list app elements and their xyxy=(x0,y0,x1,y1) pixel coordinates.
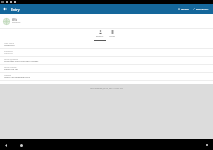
button[interactable]: Website xyxy=(0,73,213,81)
button[interactable]: Navigate up xyxy=(0,4,9,14)
staticText: Entry xyxy=(11,7,20,12)
staticText: novelty78 xyxy=(4,44,15,47)
button[interactable]: Notifications xyxy=(204,142,210,148)
button[interactable]: DETAILS xyxy=(94,29,106,41)
staticText: Personal xyxy=(12,21,21,24)
button[interactable]: NOTES xyxy=(106,29,118,41)
staticText: Secret Answer xyxy=(4,66,17,69)
staticText: User Name xyxy=(4,42,14,45)
button[interactable]: Secret Question xyxy=(0,57,213,65)
button[interactable]: DELETE xyxy=(177,4,190,14)
staticText: DETAILS xyxy=(96,35,104,38)
button[interactable]: Password xyxy=(0,49,213,57)
button[interactable]: Home xyxy=(17,141,25,149)
staticText: Secret Question xyxy=(4,58,19,61)
button[interactable]: Secret Answer xyxy=(0,65,213,73)
staticText: Fluffy the cat xyxy=(4,68,18,71)
staticText: Last updated Jul 09, 2021 10:57 PM xyxy=(90,87,123,90)
staticText: https://en.wikipedia.org xyxy=(4,76,30,79)
staticText: Website xyxy=(4,74,12,77)
button[interactable]: Back xyxy=(2,141,10,149)
button[interactable]: Wiki xyxy=(0,14,213,28)
staticText: Password xyxy=(4,50,13,53)
button[interactable]: EDIT ENTRY xyxy=(192,4,210,14)
staticText: •••••••••• xyxy=(4,52,13,55)
button[interactable]: User Name xyxy=(0,41,213,49)
staticText: EDIT ENTRY xyxy=(196,8,209,11)
staticText: Wiki xyxy=(12,18,18,22)
staticText: DELETE xyxy=(181,8,189,11)
staticText: What was your first pet's name? xyxy=(4,60,39,63)
staticText: NOTES xyxy=(109,35,116,38)
